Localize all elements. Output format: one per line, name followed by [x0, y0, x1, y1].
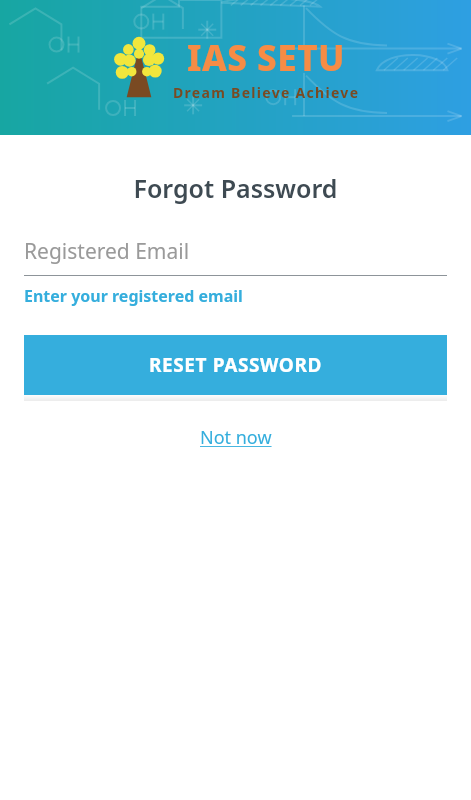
staticText: Not now	[200, 425, 272, 450]
staticText: Dream Believe Achieve	[173, 83, 360, 102]
staticText: Forgot Password	[0, 171, 471, 205]
button[interactable]: RESET PASSWORD	[24, 335, 447, 395]
staticText: RESET PASSWORD	[149, 352, 323, 378]
staticText: IAS SETU	[187, 34, 346, 82]
staticText: Registered Email	[24, 237, 190, 266]
button[interactable]: Registered Email	[24, 233, 447, 269]
staticText: Enter your registered email	[24, 285, 243, 307]
button[interactable]: Not now	[190, 421, 282, 454]
